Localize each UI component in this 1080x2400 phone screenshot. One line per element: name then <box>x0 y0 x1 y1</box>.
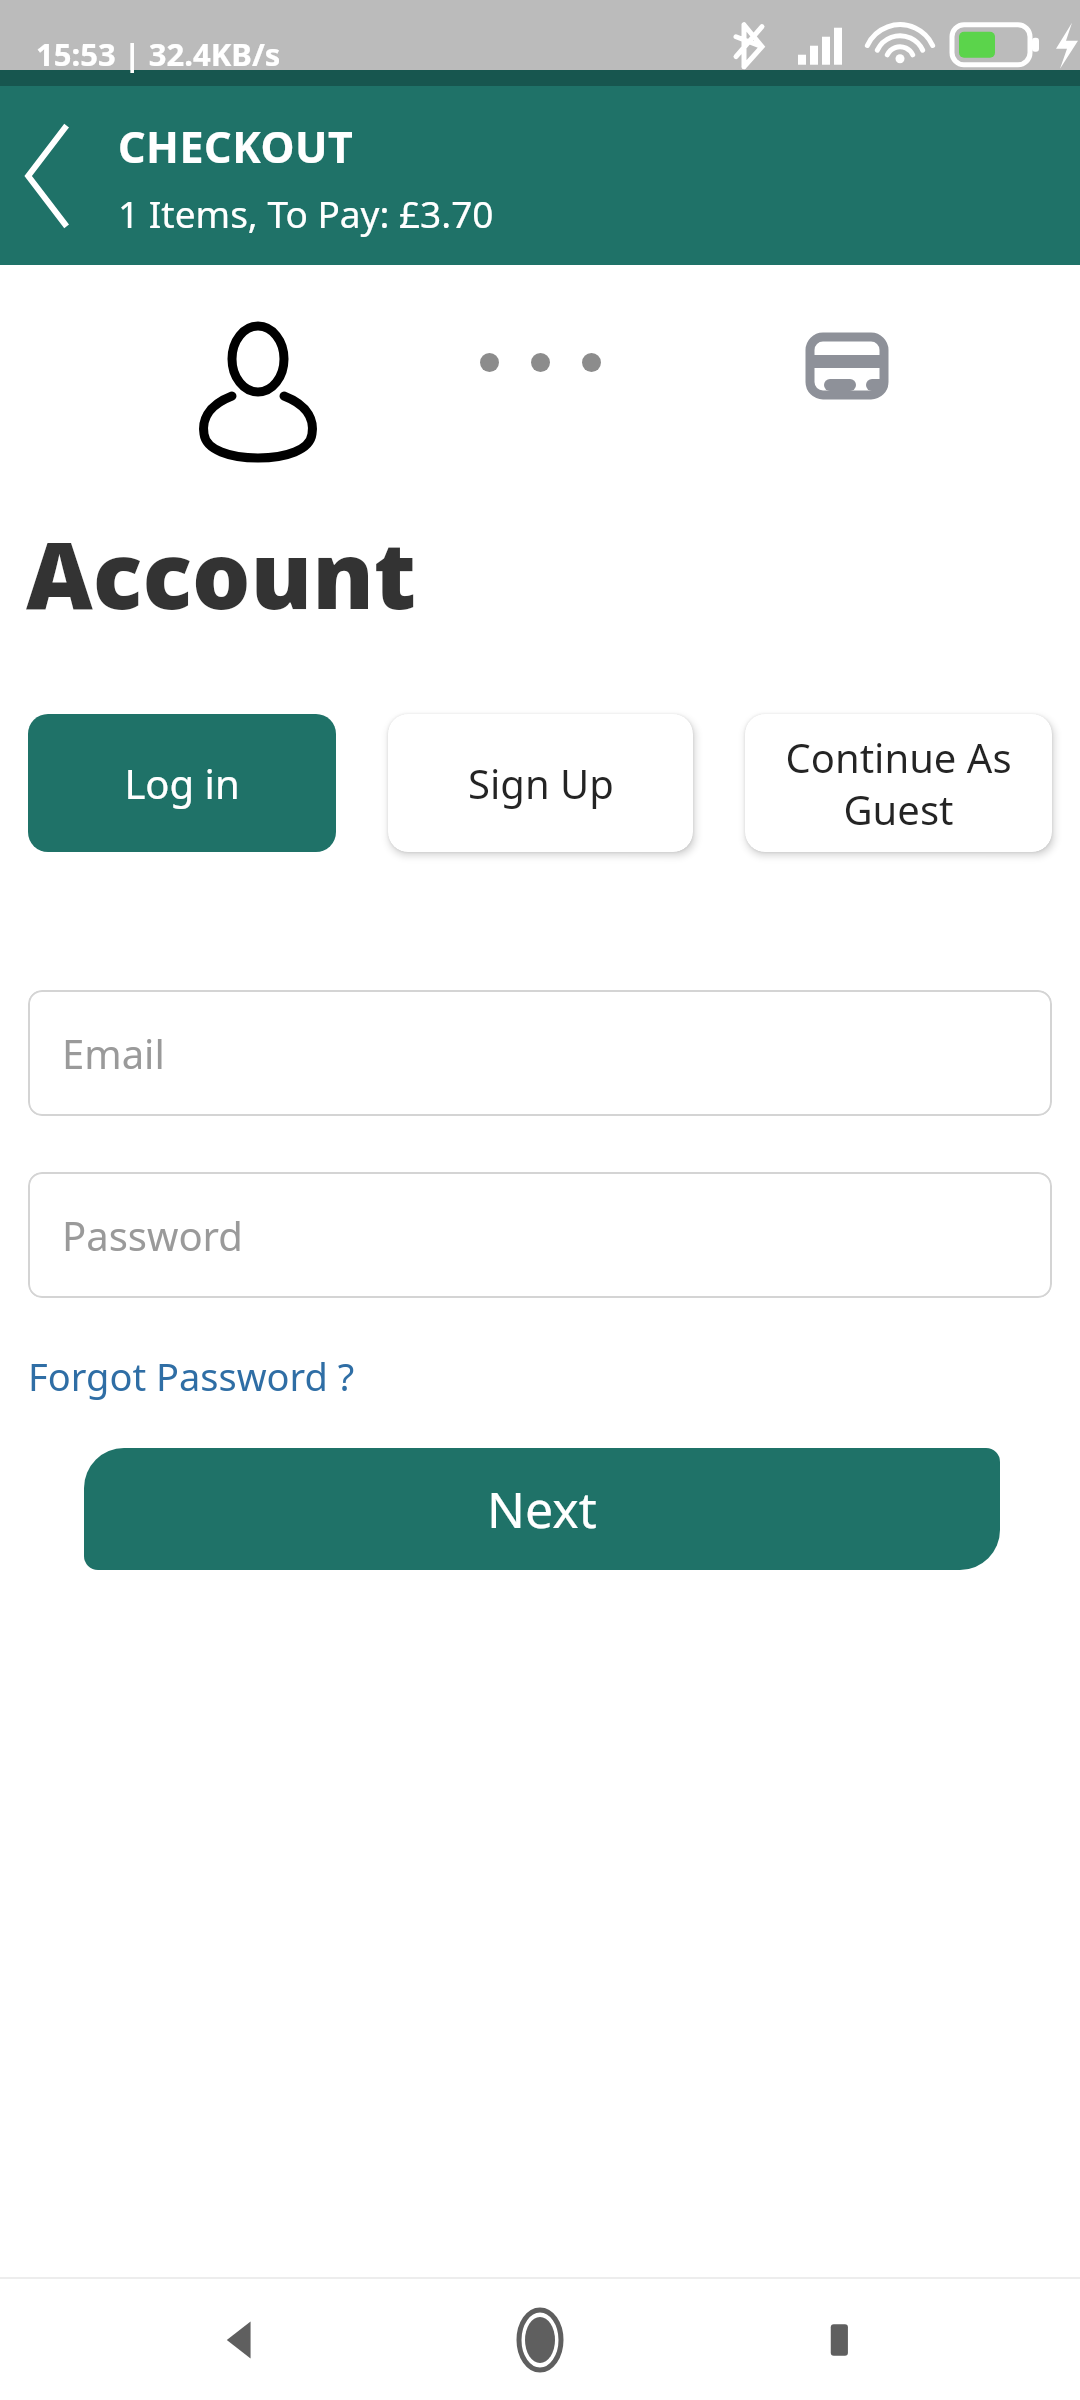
staticText: Sign Up <box>468 756 614 810</box>
staticText: Account <box>26 511 417 636</box>
staticText: Password <box>62 1208 243 1262</box>
button[interactable]: Forgot Password ? <box>28 1350 355 1402</box>
button[interactable]: Log in <box>28 714 336 852</box>
staticText: CHECKOUT <box>118 117 354 176</box>
button[interactable]: Recents <box>780 2280 900 2400</box>
staticText: Next <box>487 1475 597 1543</box>
button[interactable]: Home <box>480 2280 600 2400</box>
button[interactable]: Next <box>84 1448 1000 1570</box>
staticText: 1 Items, To Pay: £3.70 <box>118 188 494 238</box>
staticText: 15:53 | 32.4KB/s <box>36 33 281 75</box>
button[interactable]: Continue As Guest <box>745 714 1052 852</box>
staticText: Continue As Guest <box>759 730 1038 837</box>
staticText: Email <box>62 1026 165 1080</box>
button[interactable]: Back <box>0 106 96 246</box>
button[interactable]: Sign Up <box>388 714 693 852</box>
button[interactable]: Back <box>180 2280 300 2400</box>
button[interactable]: Password <box>28 1172 1052 1298</box>
staticText: Log in <box>124 756 240 810</box>
button[interactable]: Email <box>28 990 1052 1116</box>
